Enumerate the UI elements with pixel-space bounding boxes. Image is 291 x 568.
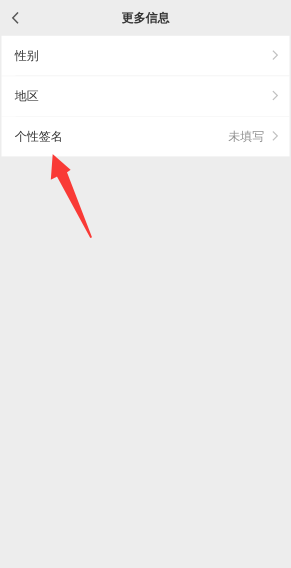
button[interactable]: 个性签名 [1,117,289,156]
staticText: 地区 [15,89,39,103]
button[interactable]: 地区 [1,76,289,116]
staticText: 更多信息 [121,10,169,25]
button[interactable]: Back [0,0,29,36]
staticText: 个性签名 [15,129,63,144]
button[interactable]: 性别 [1,36,289,76]
staticText: 未填写 [228,129,264,144]
staticText: 性别 [15,48,39,63]
